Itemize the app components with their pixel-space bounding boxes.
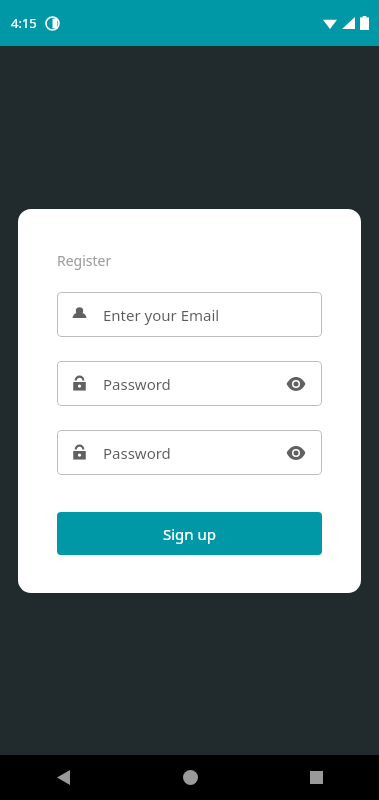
button[interactable]: Sign up — [57, 512, 322, 555]
button[interactable]: Home — [127, 755, 253, 800]
button[interactable]: Back — [0, 755, 127, 800]
button[interactable]: Enter your Email — [57, 292, 322, 337]
staticText: Password — [103, 374, 283, 394]
button[interactable]: Password — [57, 430, 322, 475]
button[interactable]: Toggle password visibility — [283, 440, 309, 466]
staticText: Register — [57, 251, 112, 270]
staticText: Password — [103, 443, 283, 463]
staticText: Sign up — [163, 524, 216, 544]
button[interactable]: Toggle password visibility — [283, 371, 309, 397]
button[interactable]: Password — [57, 361, 322, 406]
button[interactable]: Recent apps — [253, 755, 379, 800]
staticText: Enter your Email — [103, 305, 309, 325]
staticText: 4:15 — [11, 14, 37, 32]
